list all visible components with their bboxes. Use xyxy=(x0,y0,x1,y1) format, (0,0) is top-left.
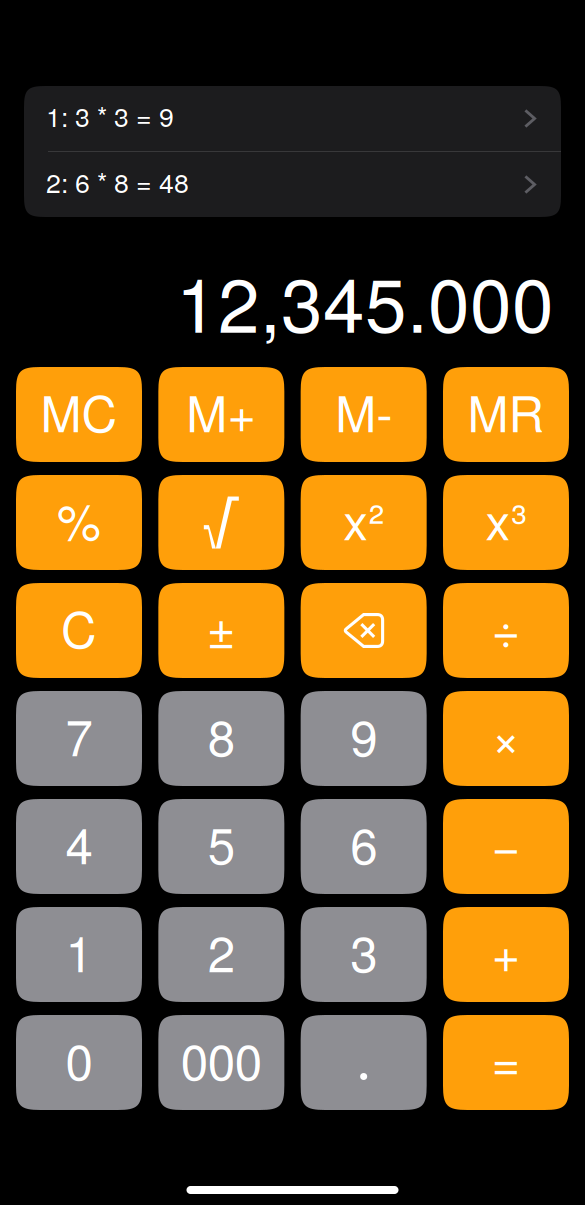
staticText: 1: 3 * 3 = 9 xyxy=(46,96,174,135)
staticText: M+ xyxy=(186,376,256,446)
button[interactable]: x³ xyxy=(443,475,569,570)
button[interactable]: 6 xyxy=(301,799,427,894)
button[interactable]: Decimal point xyxy=(301,1015,427,1110)
staticText: = xyxy=(491,1024,520,1094)
button[interactable]: 4 xyxy=(16,799,142,894)
button[interactable]: ± xyxy=(158,583,284,678)
button[interactable]: Square root xyxy=(158,475,284,570)
button[interactable]: − xyxy=(443,799,569,894)
button[interactable]: Backspace xyxy=(301,583,427,678)
staticText: + xyxy=(491,916,520,986)
button[interactable]: 5 xyxy=(158,799,284,894)
staticText: MR xyxy=(467,376,544,446)
button[interactable]: M- xyxy=(301,367,427,462)
button[interactable]: 3 xyxy=(301,907,427,1002)
staticText: 000 xyxy=(181,1024,262,1094)
staticText: % xyxy=(57,484,101,554)
staticText: × xyxy=(491,700,520,770)
staticText: C xyxy=(61,592,97,662)
button[interactable]: = xyxy=(443,1015,569,1110)
button[interactable]: % xyxy=(16,475,142,570)
staticText: − xyxy=(491,808,520,878)
button[interactable]: x² xyxy=(301,475,427,570)
button[interactable]: 8 xyxy=(158,691,284,786)
button[interactable]: ÷ xyxy=(443,583,569,678)
staticText: 5 xyxy=(208,808,235,878)
staticText: 2 xyxy=(208,916,235,986)
staticText: 1 xyxy=(65,916,92,986)
button[interactable]: 7 xyxy=(16,691,142,786)
staticText: ± xyxy=(207,592,236,662)
staticText: x³ xyxy=(485,484,526,554)
staticText: 9 xyxy=(350,700,377,770)
button[interactable]: 1: 3 * 3 = 9 xyxy=(24,86,561,151)
staticText: 6 xyxy=(350,808,377,878)
staticText: 2: 6 * 8 = 48 xyxy=(46,162,189,201)
staticText: 7 xyxy=(65,700,92,770)
button[interactable]: MR xyxy=(443,367,569,462)
button[interactable]: C xyxy=(16,583,142,678)
staticText: 8 xyxy=(208,700,235,770)
button[interactable]: 0 xyxy=(16,1015,142,1110)
button[interactable]: 1 xyxy=(16,907,142,1002)
staticText: 3 xyxy=(350,916,377,986)
button[interactable]: 2 xyxy=(158,907,284,1002)
button[interactable]: MC xyxy=(16,367,142,462)
staticText: MC xyxy=(40,376,117,446)
button[interactable]: 2: 6 * 8 = 48 xyxy=(24,152,561,217)
button[interactable]: 9 xyxy=(301,691,427,786)
button[interactable]: + xyxy=(443,907,569,1002)
button[interactable]: 000 xyxy=(158,1015,284,1110)
staticText: x² xyxy=(343,484,384,554)
staticText: 4 xyxy=(65,808,92,878)
staticText: ÷ xyxy=(491,592,520,662)
staticText: 0 xyxy=(65,1024,92,1094)
button[interactable]: × xyxy=(443,691,569,786)
staticText: 12,345.000 xyxy=(176,247,554,354)
staticText: M- xyxy=(335,376,392,446)
button[interactable]: M+ xyxy=(158,367,284,462)
